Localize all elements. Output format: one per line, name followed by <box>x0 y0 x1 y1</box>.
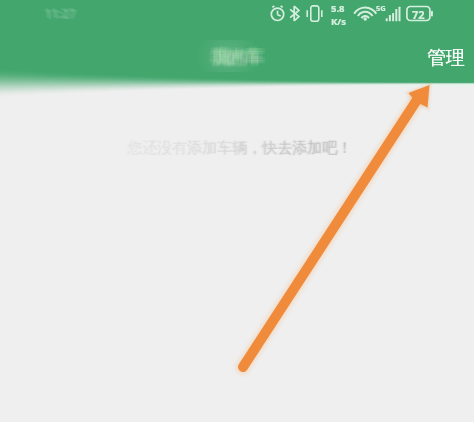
staticText: 5G <box>376 3 386 13</box>
staticText: 管理 <box>427 46 465 70</box>
staticText: 我的车 <box>209 46 260 67</box>
staticText: 我的车 <box>209 47 260 68</box>
staticText: 我的车 <box>210 49 261 70</box>
staticText: 我的车 <box>211 46 262 67</box>
staticText: 您还没有添加车辆，快去添加吧！ <box>2 139 474 158</box>
staticText: 我的车 <box>211 44 262 65</box>
staticText: 您还没有添加车辆，快去添加吧！ <box>1 139 474 158</box>
staticText: 我的车 <box>210 47 261 68</box>
staticText: 5.8 <box>331 2 345 15</box>
staticText: 您还没有添加车辆，快去添加吧！ <box>3 139 474 158</box>
staticText: 您还没有添加车辆，快去添加吧！ <box>3 138 474 157</box>
staticText: 我的车 <box>213 44 264 65</box>
staticText: 我的车 <box>209 47 260 68</box>
staticText: 我的车 <box>215 46 266 67</box>
staticText: 我的车 <box>215 49 266 70</box>
staticText: 我的车 <box>215 48 266 69</box>
staticText: 您还没有添加车辆，快去添加吧！ <box>4 139 474 158</box>
button[interactable]: 管理 <box>409 28 474 81</box>
staticText: 我的车 <box>215 46 266 67</box>
staticText: 我的车 <box>209 49 260 70</box>
staticText: 我的车 <box>214 45 265 66</box>
staticText: 11:27 <box>47 6 78 22</box>
staticText: 我的车 <box>209 45 260 66</box>
staticText: 我的车 <box>214 48 265 69</box>
staticText: 您还没有添加车辆，快去添加吧！ <box>3 138 474 157</box>
staticText: 我的车 <box>215 47 266 68</box>
staticText: 我的车 <box>215 44 266 65</box>
staticText: 您还没有添加车辆，快去添加吧！ <box>4 139 474 158</box>
staticText: 我的车 <box>214 46 265 67</box>
staticText: 我的车 <box>210 46 261 67</box>
staticText: 我的车 <box>213 48 264 69</box>
staticText: 我的车 <box>215 47 266 68</box>
staticText: 我的车 <box>212 44 263 65</box>
staticText: 我的车 <box>214 49 265 70</box>
staticText: 您还没有添加车辆，快去添加吧！ <box>2 139 474 158</box>
staticText: 11:27 <box>45 5 76 21</box>
staticText: 我的车 <box>215 44 266 65</box>
staticText: 我的车 <box>213 47 264 68</box>
staticText: 您还没有添加车辆，快去添加吧！ <box>1 139 474 158</box>
staticText: 11:27 <box>44 5 75 21</box>
staticText: 您还没有添加车辆，快去添加吧！ <box>2 138 474 157</box>
staticText: 我的车 <box>212 48 263 69</box>
staticText: 我的车 <box>211 45 262 66</box>
staticText: 我的车 <box>209 47 260 68</box>
staticText: 我的车 <box>211 49 262 70</box>
staticText: 我的车 <box>209 45 260 66</box>
staticText: 我的车 <box>210 48 261 69</box>
staticText: 我的车 <box>209 44 260 65</box>
staticText: 我的车 <box>209 44 260 65</box>
staticText: 我的车 <box>214 44 265 65</box>
staticText: 我的车 <box>213 47 264 68</box>
staticText: 我的车 <box>214 47 265 68</box>
staticText: 我的车 <box>209 49 260 70</box>
staticText: 我的车 <box>211 48 262 69</box>
staticText: 我的车 <box>212 46 263 67</box>
staticText: 我的车 <box>213 46 264 67</box>
staticText: 您还没有添加车辆，快去添加吧！ <box>3 139 474 158</box>
staticText: 72 <box>412 7 425 22</box>
staticText: 我的车 <box>210 44 261 65</box>
staticText: 我的车 <box>212 47 263 68</box>
staticText: 我的车 <box>209 48 260 69</box>
staticText: 我的车 <box>215 48 266 69</box>
staticText: 我的车 <box>211 47 262 68</box>
staticText: K/s <box>331 15 347 28</box>
staticText: 我的车 <box>213 49 264 70</box>
staticText: 我的车 <box>209 47 260 68</box>
staticText: 我的车 <box>210 47 261 68</box>
staticText: 我的车 <box>212 47 263 68</box>
staticText: 我的车 <box>213 45 264 66</box>
staticText: 我的车 <box>215 47 266 68</box>
staticText: 您还没有添加车辆，快去添加吧！ <box>3 139 474 158</box>
staticText: 我的车 <box>215 45 266 66</box>
staticText: 11:27 <box>46 6 77 22</box>
staticText: 我的车 <box>215 49 266 70</box>
staticText: 我的车 <box>212 45 263 66</box>
staticText: 我的车 <box>209 46 260 67</box>
staticText: 您还没有添加车辆，快去添加吧！ <box>3 139 474 158</box>
staticText: 我的车 <box>214 47 265 68</box>
staticText: 您还没有添加车辆，快去添加吧！ <box>1 138 474 157</box>
staticText: 我的车 <box>210 45 261 66</box>
staticText: 11:27 <box>43 4 74 20</box>
staticText: 我的车 <box>215 45 266 66</box>
staticText: 我的车 <box>211 47 262 68</box>
staticText: 我的车 <box>215 47 266 68</box>
staticText: 我的车 <box>212 49 263 70</box>
staticText: 您还没有添加车辆，快去添加吧！ <box>4 138 474 157</box>
staticText: 我的车 <box>209 48 260 69</box>
